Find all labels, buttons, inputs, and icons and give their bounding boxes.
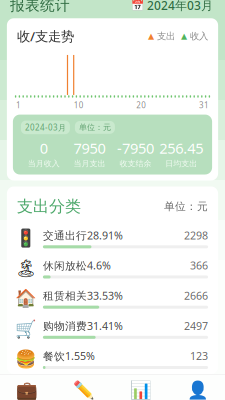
staticText: 休闲放松4.6% <box>43 258 111 272</box>
staticText: 🛒 <box>15 319 37 339</box>
staticText: 🏠 <box>15 289 37 308</box>
staticText: 📅 <box>131 0 144 11</box>
button[interactable]: 📅 <box>129 0 215 15</box>
button[interactable]: ✏️ <box>55 379 112 400</box>
staticText: 单位：元 <box>164 200 208 213</box>
staticText: 报表统计 <box>10 0 70 14</box>
staticText: 🍔 <box>15 349 37 369</box>
staticText: -7950 <box>117 138 154 158</box>
button[interactable]: 📊 <box>112 379 170 400</box>
staticText: 日均支出 <box>165 159 197 168</box>
staticText: ✏️ <box>73 380 95 400</box>
staticText: 2497 <box>184 319 208 333</box>
staticText: 1 <box>16 100 21 111</box>
staticText: 10 <box>74 100 84 111</box>
staticText: 租赁相关33.53% <box>43 288 123 303</box>
staticText: 2666 <box>184 288 208 303</box>
staticText: 🚦 <box>15 228 37 248</box>
staticText: 支出分类 <box>17 196 81 216</box>
staticText: 123 <box>190 349 208 363</box>
staticText: 当月支出 <box>74 159 106 168</box>
staticText: 366 <box>190 258 208 272</box>
button[interactable]: 🍔 <box>7 344 218 374</box>
staticText: 7950 <box>74 138 106 158</box>
button[interactable]: 🏠 <box>7 283 218 314</box>
button[interactable]: 👤 <box>170 379 225 400</box>
staticText: 支出 <box>157 30 175 42</box>
staticText: 2024年03月 <box>147 0 213 13</box>
button[interactable]: 🏝 <box>7 253 218 283</box>
staticText: 交通出行28.91% <box>43 228 123 242</box>
staticText: 👤 <box>187 380 209 400</box>
staticText: 0 <box>40 138 48 158</box>
staticText: 购物消费31.41% <box>43 319 123 333</box>
button[interactable]: 🛒 <box>7 314 218 344</box>
button[interactable]: 💼 <box>0 379 55 400</box>
staticText: 收支结余 <box>119 159 151 168</box>
staticText: 31 <box>199 100 209 111</box>
staticText: 收/支走势 <box>17 27 74 45</box>
staticText: 2298 <box>184 228 208 242</box>
staticText: 💼 <box>15 380 37 400</box>
staticText: 256.45 <box>159 138 203 158</box>
staticText: 📊 <box>130 380 152 400</box>
staticText: 🏝 <box>15 258 37 278</box>
staticText: 收入 <box>190 30 208 42</box>
staticText: 单位：元 <box>79 122 111 132</box>
staticText: ▲ <box>181 32 187 41</box>
staticText: 2024-03月 <box>25 122 66 133</box>
staticText: 20 <box>136 100 146 111</box>
button[interactable]: 🚦 <box>7 223 218 253</box>
staticText: ▲ <box>148 32 154 41</box>
staticText: 当月收入 <box>28 159 60 168</box>
staticText: 餐饮1.55% <box>43 349 95 363</box>
